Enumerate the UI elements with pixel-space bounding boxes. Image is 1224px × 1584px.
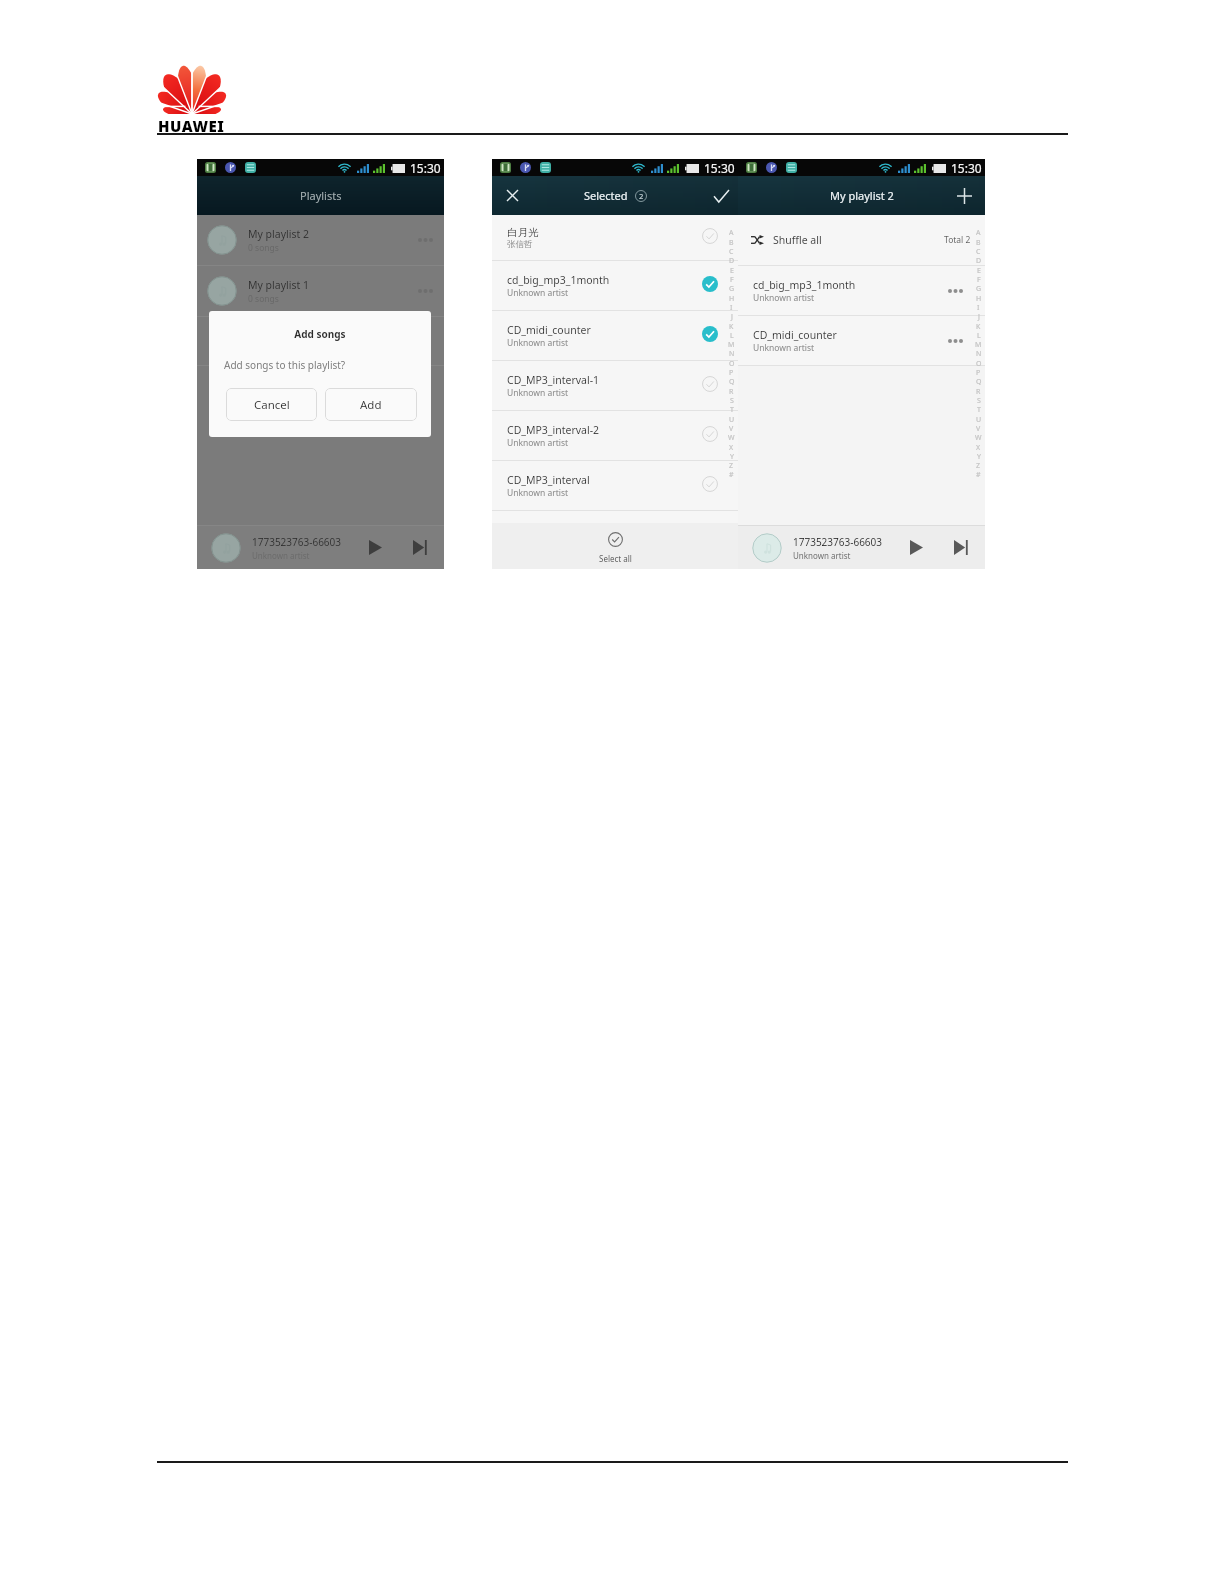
- staticText: Unknown artist: [507, 437, 569, 449]
- staticText: Add: [360, 397, 382, 413]
- other: Next: [413, 540, 427, 555]
- staticText: Total 2: [944, 234, 971, 246]
- button[interactable]: Shuffle all: [738, 215, 985, 265]
- staticText: H: [729, 294, 735, 304]
- staticText: Add songs to this playlist?: [224, 358, 346, 372]
- staticText: B: [976, 238, 981, 248]
- button[interactable]: cd_big_mp3_1month: [492, 261, 738, 310]
- staticText: A: [729, 228, 734, 238]
- staticText: T: [977, 405, 981, 415]
- staticText: A: [976, 228, 981, 238]
- staticText: 1773523763-66603: [252, 535, 342, 549]
- staticText: D: [729, 256, 735, 266]
- button[interactable]: Confirm: [714, 190, 729, 202]
- staticText: C: [976, 247, 981, 257]
- staticText: 0 songs: [248, 242, 279, 254]
- staticText: CD_MP3_interval-2: [507, 423, 600, 437]
- button[interactable]: Play: [910, 540, 923, 555]
- staticText: I: [730, 303, 733, 313]
- staticText: C: [729, 247, 734, 257]
- staticText: F: [977, 275, 981, 285]
- button[interactable]: Next: [413, 540, 427, 555]
- staticText: D: [976, 256, 982, 266]
- staticText: F: [730, 275, 734, 285]
- staticText: G: [976, 284, 982, 294]
- staticText: Playlists: [300, 188, 342, 203]
- other: More options: [418, 238, 433, 242]
- staticText: Y: [730, 452, 734, 462]
- staticText: Q: [729, 377, 735, 387]
- button[interactable]: Close: [507, 190, 518, 201]
- staticText: E: [977, 266, 981, 276]
- button[interactable]: Play: [369, 540, 382, 555]
- staticText: cd_big_mp3_1month: [507, 273, 610, 287]
- button[interactable]: CD_midi_counter: [492, 311, 738, 360]
- staticText: Add songs: [209, 327, 431, 341]
- staticText: P: [729, 368, 734, 378]
- staticText: 张信哲: [507, 239, 533, 250]
- staticText: U: [729, 415, 735, 425]
- staticText: U: [976, 415, 982, 425]
- other: Play: [369, 540, 382, 555]
- staticText: T: [730, 405, 734, 415]
- staticText: 1773523763-66603: [793, 535, 883, 549]
- other: More options: [418, 289, 433, 293]
- other: Next: [954, 540, 968, 555]
- staticText: S: [730, 396, 734, 406]
- staticText: Unknown artist: [507, 287, 569, 299]
- staticText: P: [976, 368, 981, 378]
- staticText: M: [728, 340, 735, 350]
- other: More options: [948, 289, 963, 293]
- staticText: L: [977, 331, 981, 341]
- staticText: Y: [977, 452, 981, 462]
- staticText: cd_big_mp3_1month: [753, 278, 856, 292]
- button[interactable]: Next: [954, 540, 968, 555]
- staticText: O: [729, 359, 735, 369]
- button[interactable]: CD_MP3_interval: [492, 461, 738, 510]
- staticText: W: [728, 433, 735, 443]
- button[interactable]: Cancel: [226, 388, 317, 421]
- staticText: Unknown artist: [753, 292, 815, 304]
- staticText: CD_midi_counter: [507, 323, 591, 337]
- staticText: #: [729, 470, 734, 480]
- staticText: HUAWEI: [158, 116, 225, 136]
- staticText: R: [976, 387, 981, 397]
- button[interactable]: CD_MP3_interval-2: [492, 411, 738, 460]
- button[interactable]: My playlist 2: [197, 215, 444, 265]
- button[interactable]: 白月光: [492, 215, 738, 260]
- staticText: K: [729, 322, 734, 332]
- staticText: N: [976, 349, 982, 359]
- button[interactable]: My playlist 1: [197, 266, 444, 316]
- staticText: My playlist 2: [248, 227, 309, 241]
- button[interactable]: cd_big_mp3_1month: [738, 266, 985, 315]
- button[interactable]: Add: [325, 388, 417, 421]
- staticText: My playlist 1: [248, 278, 309, 292]
- button[interactable]: CD_midi_counter: [738, 316, 985, 365]
- staticText: S: [977, 396, 981, 406]
- staticText: X: [976, 443, 981, 453]
- staticText: L: [730, 331, 734, 341]
- staticText: Select all: [599, 553, 632, 564]
- staticText: V: [729, 424, 734, 434]
- staticText: X: [729, 443, 734, 453]
- button[interactable]: Add: [957, 188, 972, 204]
- staticText: B: [729, 238, 734, 248]
- staticText: 0 songs: [248, 293, 279, 305]
- staticText: CD_MP3_interval: [507, 473, 590, 487]
- staticText: Unknown artist: [793, 550, 851, 561]
- staticText: N: [729, 349, 735, 359]
- staticText: 15:30: [410, 160, 441, 176]
- staticText: 2: [639, 191, 644, 201]
- staticText: J: [731, 312, 733, 322]
- staticText: 15:30: [704, 160, 735, 176]
- staticText: CD_midi_counter: [753, 328, 837, 342]
- staticText: G: [729, 284, 735, 294]
- staticText: O: [976, 359, 982, 369]
- staticText: W: [975, 433, 982, 443]
- other: Play: [910, 540, 923, 555]
- staticText: M: [975, 340, 982, 350]
- staticText: CD_MP3_interval-1: [507, 373, 600, 387]
- staticText: Unknown artist: [507, 387, 569, 399]
- button[interactable]: Select all: [492, 523, 738, 569]
- button[interactable]: CD_MP3_interval-1: [492, 361, 738, 410]
